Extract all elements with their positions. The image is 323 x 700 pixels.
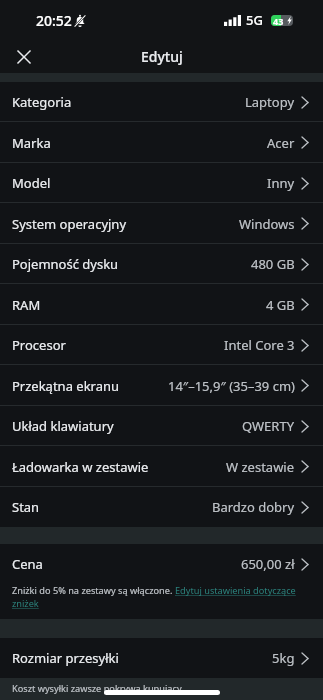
staticText: Przekątna ekranu <box>12 377 120 395</box>
button[interactable]: Model <box>0 163 323 203</box>
staticText: Intel Core 3 <box>224 336 295 354</box>
staticText: Stan <box>12 498 40 516</box>
staticText: Ładowarka w zestawie <box>12 458 149 476</box>
staticText: Procesor <box>12 336 66 354</box>
button[interactable]: Kategoria <box>0 82 323 122</box>
button[interactable]: Stan <box>0 487 323 527</box>
button[interactable]: Marka <box>0 122 323 163</box>
staticText: QWERTY <box>242 417 295 435</box>
staticText: 5G <box>246 11 263 29</box>
staticText: Zniżki do 5% na zestawy są włączone. <box>12 584 175 597</box>
staticText: Rozmiar przesyłki <box>12 649 119 667</box>
button[interactable]: RAM <box>0 284 323 325</box>
staticText: Cena <box>12 555 43 573</box>
staticText: 480 GB <box>251 255 295 273</box>
staticText: 4 GB <box>266 296 295 314</box>
staticText: 14″–15,9″ (35–39 cm) <box>168 377 295 395</box>
staticText: Kategoria <box>12 93 72 111</box>
button[interactable]: Procesor <box>0 325 323 365</box>
button[interactable]: Close <box>9 42 39 72</box>
staticText: Model <box>12 174 51 192</box>
staticText: 5kg <box>272 649 295 667</box>
staticText: 43 <box>273 15 284 26</box>
staticText: Marka <box>12 134 51 152</box>
staticText: Pojemność dysku <box>12 255 119 273</box>
staticText: Windows <box>239 215 295 233</box>
button[interactable]: Cena <box>0 544 323 584</box>
button[interactable]: Układ klawiatury <box>0 406 323 446</box>
button[interactable]: Ładowarka w zestawie <box>0 446 323 487</box>
staticText: Acer <box>267 134 295 152</box>
staticText: Układ klawiatury <box>12 417 114 435</box>
button[interactable]: zniżek <box>12 597 39 610</box>
button[interactable]: Edytuj ustawienia dotyczące <box>175 584 296 597</box>
staticText: Koszt wysyłki zawsze pokrywa kupujący <box>12 682 182 695</box>
staticText: Bardzo dobry <box>212 498 295 516</box>
button[interactable]: Rozmiar przesyłki <box>0 638 323 678</box>
staticText: W zestawie <box>226 458 295 476</box>
staticText: Inny <box>267 174 295 192</box>
staticText: RAM <box>12 296 41 314</box>
button[interactable]: Pojemność dysku <box>0 244 323 284</box>
staticText: System operacyjny <box>12 215 127 233</box>
staticText: Laptopy <box>245 93 295 111</box>
button[interactable]: System operacyjny <box>0 203 323 244</box>
staticText: Edytuj <box>141 47 183 66</box>
staticText: 20:52 <box>36 11 72 30</box>
button[interactable]: Przekątna ekranu <box>0 365 323 406</box>
staticText: 650,00 zł <box>241 555 295 573</box>
